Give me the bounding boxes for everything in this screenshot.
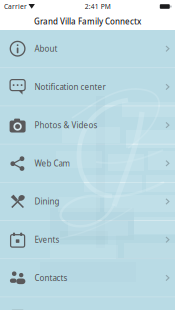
staticText: Events <box>35 234 60 245</box>
button[interactable]: Notification center <box>0 68 175 106</box>
button[interactable]: Events <box>0 221 175 258</box>
staticText: Notification center <box>35 82 106 92</box>
staticText: Web Cam <box>35 158 70 169</box>
button[interactable]: Dining <box>0 183 175 220</box>
button[interactable]: Photos & Videos <box>0 106 175 144</box>
staticText: Contacts <box>35 273 68 283</box>
staticText: Photos & Videos <box>35 120 98 130</box>
button[interactable]: Contacts <box>0 259 175 297</box>
staticText: Grand Villa Family Connectx <box>34 16 141 27</box>
button[interactable]: About <box>0 30 175 67</box>
staticText: 2:41 PM <box>85 2 111 11</box>
staticText: Dining <box>35 196 60 207</box>
button[interactable]: Web Cam <box>0 145 175 182</box>
staticText: Carrier <box>4 2 27 11</box>
staticText: About <box>35 43 58 54</box>
